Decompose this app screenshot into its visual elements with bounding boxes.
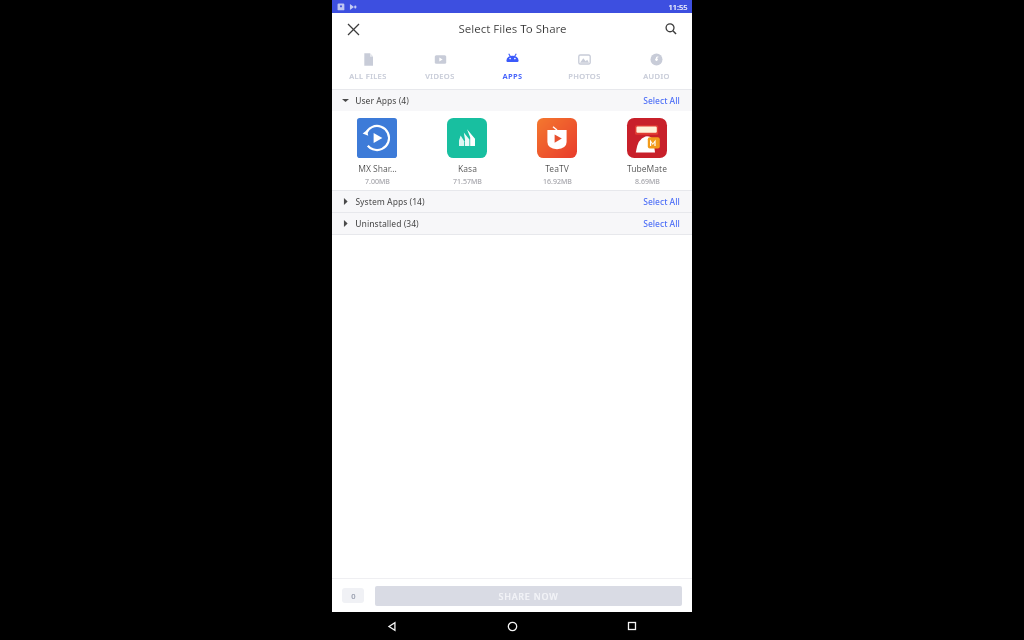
button[interactable]: Select All: [641, 216, 682, 232]
button[interactable]: ALL FILES: [332, 44, 404, 89]
staticText: 71.57MB: [453, 177, 482, 187]
button[interactable]: 0: [342, 588, 364, 603]
staticText: Select Files To Share: [458, 21, 567, 37]
button[interactable]: Select All: [641, 93, 682, 109]
staticText: 16.92MB: [543, 177, 572, 187]
staticText: ALL FILES: [349, 71, 387, 81]
staticText: MX Shar...: [358, 163, 397, 175]
staticText: Uninstalled (34): [355, 218, 419, 230]
button[interactable]: Close: [341, 17, 365, 41]
button[interactable]: APPS: [476, 44, 548, 89]
staticText: VIDEOS: [425, 71, 455, 81]
button[interactable]: Home: [452, 612, 572, 640]
staticText: Select All: [643, 196, 680, 208]
staticText: 8.69MB: [635, 177, 660, 187]
button[interactable]: AUDIO: [620, 44, 692, 89]
button[interactable]: Recent apps: [572, 612, 692, 640]
button[interactable]: Uninstalled (34): [332, 213, 692, 234]
button[interactable]: TeaTV: [512, 118, 602, 190]
staticText: PHOTOS: [568, 71, 601, 81]
button[interactable]: MX Shar...: [332, 118, 422, 190]
staticText: TeaTV: [545, 163, 569, 175]
staticText: User Apps (4): [355, 95, 409, 107]
staticText: TubeMate: [627, 163, 667, 175]
staticText: Select All: [643, 95, 680, 107]
button[interactable]: SHARE NOW: [375, 586, 682, 606]
staticText: AUDIO: [643, 71, 670, 81]
staticText: 0: [351, 591, 356, 601]
staticText: SHARE NOW: [498, 590, 559, 602]
staticText: Select All: [643, 218, 680, 230]
button[interactable]: Kasa: [422, 118, 512, 190]
button[interactable]: System Apps (14): [332, 191, 692, 212]
button[interactable]: Select All: [641, 194, 682, 210]
staticText: 7.00MB: [365, 177, 390, 187]
staticText: APPS: [502, 71, 523, 81]
staticText: System Apps (14): [355, 196, 425, 208]
staticText: Kasa: [458, 163, 477, 175]
button[interactable]: TubeMate: [602, 118, 692, 190]
button[interactable]: PHOTOS: [548, 44, 620, 89]
button[interactable]: User Apps (4): [332, 90, 692, 111]
button[interactable]: VIDEOS: [404, 44, 476, 89]
staticText: 11:55: [668, 2, 688, 12]
button[interactable]: Back: [332, 612, 452, 640]
button[interactable]: Search: [659, 17, 683, 41]
